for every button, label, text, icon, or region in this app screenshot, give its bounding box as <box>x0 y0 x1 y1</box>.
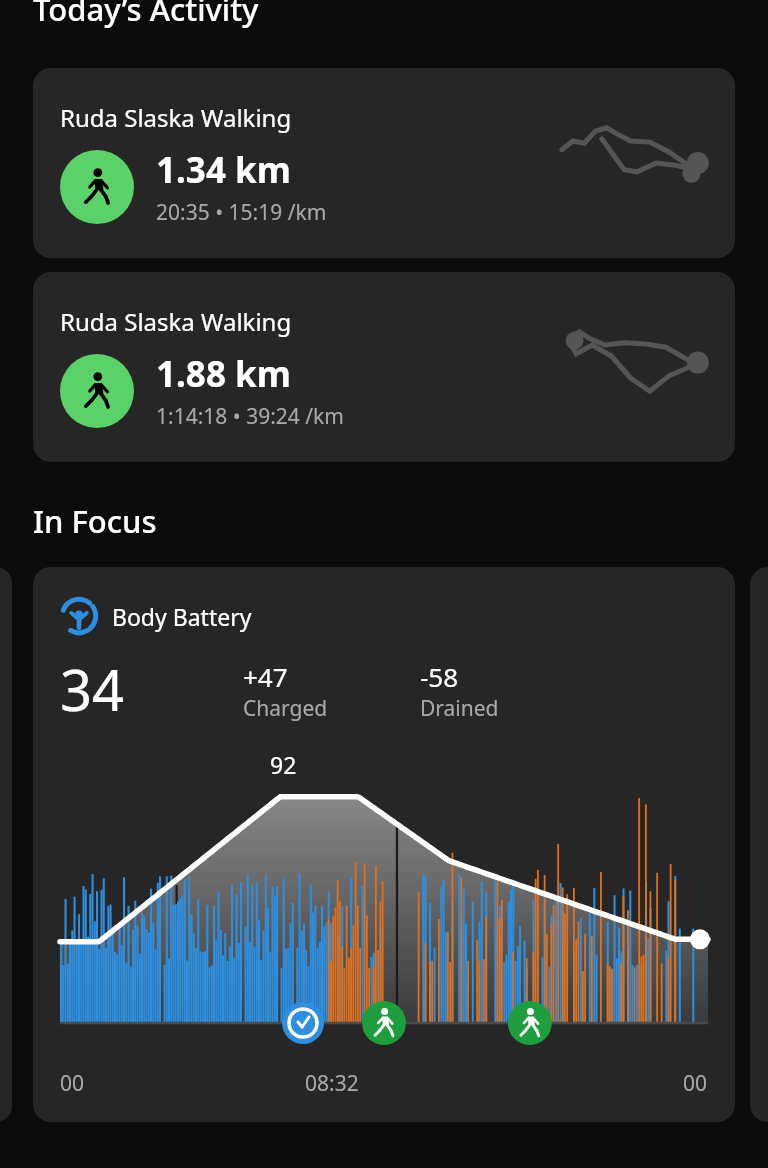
staticText: Ruda Slaska Walking <box>60 305 292 338</box>
staticText: 1:14:18 • 39:24 /km <box>156 402 344 431</box>
staticText: 1.34 km <box>156 146 291 194</box>
staticText: -58 <box>420 659 459 694</box>
staticText: Drained <box>420 694 499 723</box>
button[interactable]: Body Battery <box>33 567 735 1122</box>
other: Body Battery <box>60 597 98 635</box>
staticText: In Focus <box>33 500 157 542</box>
staticText: 92 <box>270 749 297 780</box>
staticText: 34 <box>60 651 125 727</box>
staticText: 20:35 • 15:19 /km <box>156 198 327 227</box>
staticText: Ruda Slaska Walking <box>60 101 292 134</box>
staticText: 00 <box>60 1069 85 1098</box>
button[interactable] <box>750 567 768 1122</box>
staticText: 1.88 km <box>156 350 291 398</box>
staticText: 08:32 <box>305 1069 359 1098</box>
staticText: Charged <box>243 694 328 723</box>
staticText: Body Battery <box>112 601 252 632</box>
button[interactable]: Ruda Slaska Walking <box>33 272 735 462</box>
staticText: Today’s Activity <box>33 0 259 30</box>
staticText: 00 <box>683 1069 708 1098</box>
staticText: +47 <box>243 659 288 694</box>
button[interactable] <box>0 567 12 1122</box>
button[interactable]: Ruda Slaska Walking <box>33 68 735 258</box>
